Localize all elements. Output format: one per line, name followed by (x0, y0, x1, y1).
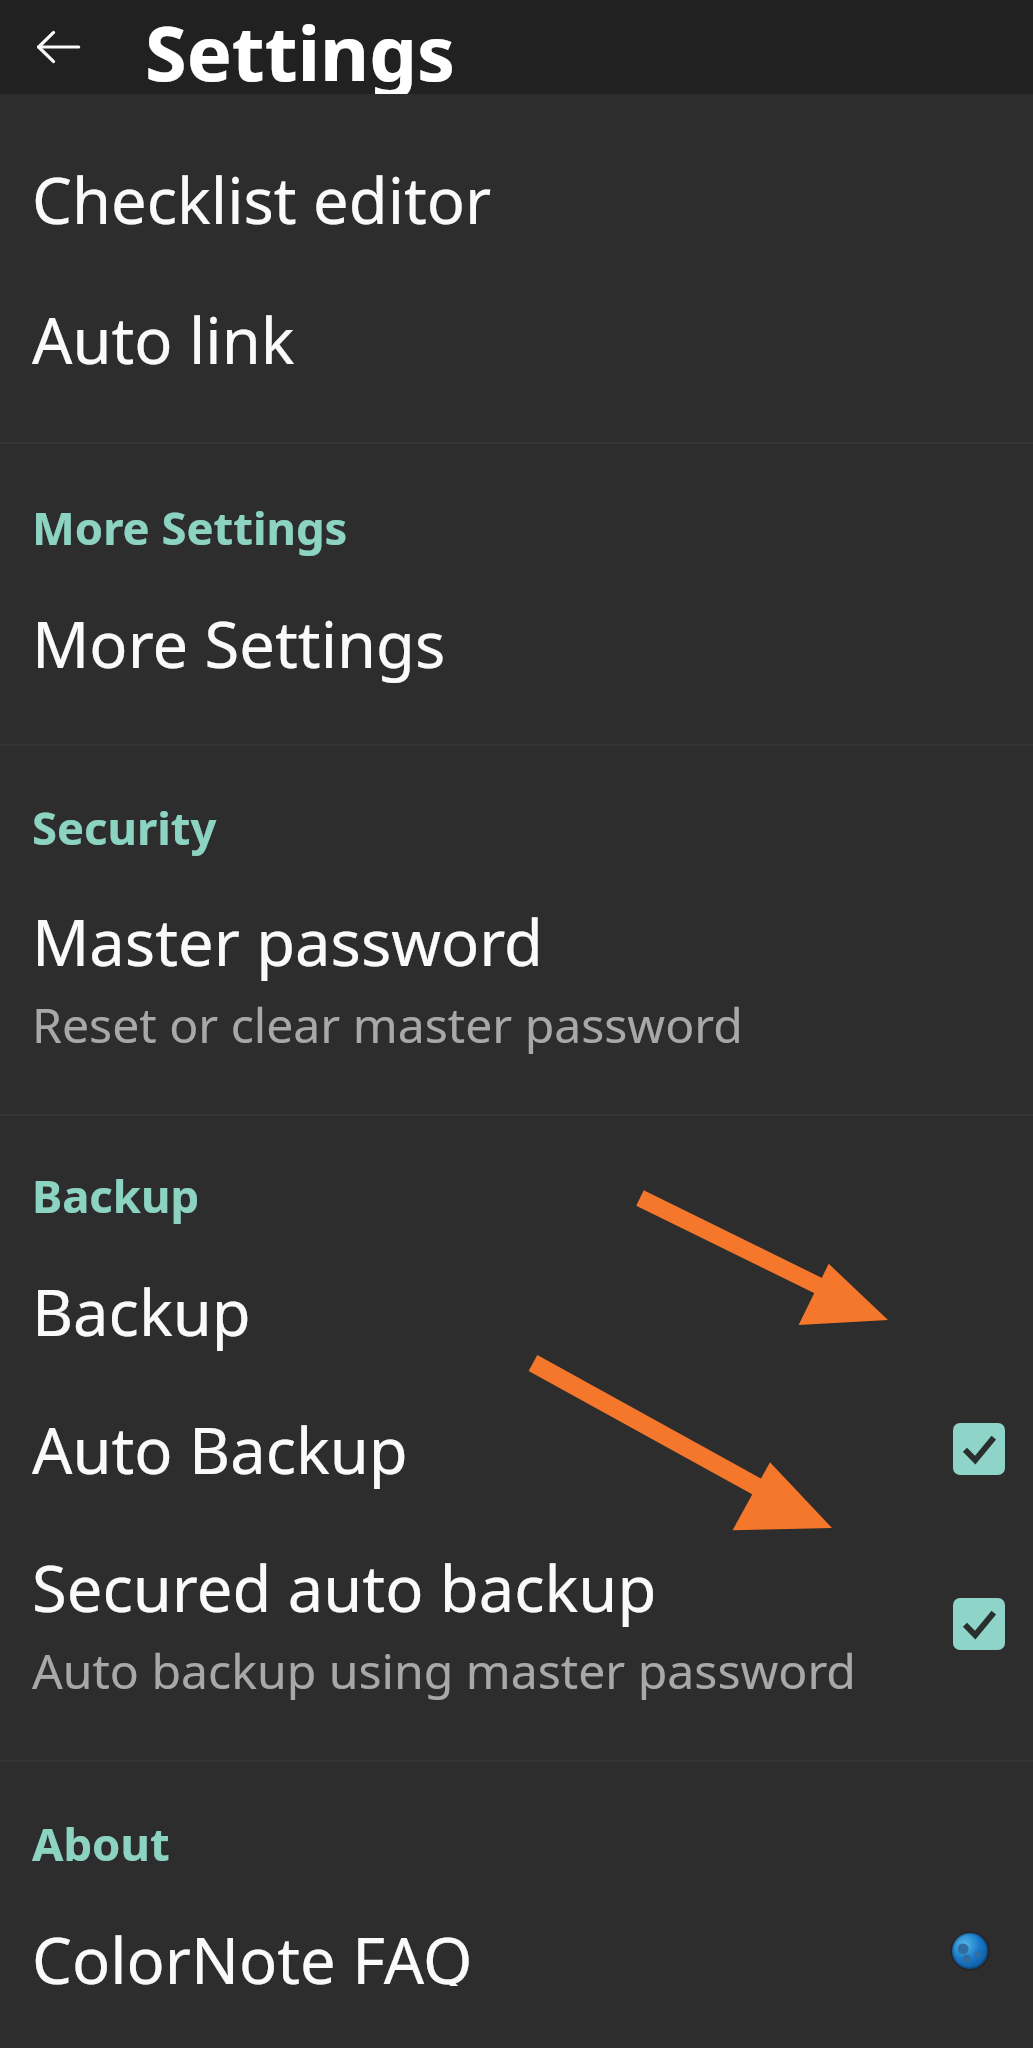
button[interactable]: Auto link (0, 296, 1033, 442)
button[interactable]: Backup (0, 1268, 1033, 1406)
staticText: Secured auto backup (32, 1544, 657, 1630)
staticText: Auto backup using master password (32, 1638, 856, 1704)
button[interactable]: ColorNote FAQ (0, 1916, 1033, 2048)
button[interactable]: Enabled (953, 1423, 1005, 1475)
staticText: Reset or clear master password (32, 992, 743, 1058)
button[interactable]: Master password (0, 898, 1033, 1114)
button[interactable]: Auto Backup (0, 1406, 1033, 1544)
staticText: More Settings (32, 496, 348, 558)
button[interactable]: Secured auto backup (0, 1544, 1033, 1760)
staticText: Auto link (32, 296, 295, 382)
staticText: ColorNote FAQ (32, 1916, 473, 1986)
staticText: Backup (32, 1164, 200, 1226)
staticText: Auto Backup (32, 1406, 408, 1492)
staticText: Security (32, 796, 217, 858)
staticText: Backup (32, 1268, 251, 1354)
button[interactable]: Open web FAQ (947, 1928, 993, 1974)
button[interactable]: Enabled (953, 1598, 1005, 1650)
staticText: About (32, 1812, 170, 1874)
button[interactable]: Back (18, 7, 98, 87)
staticText: Settings (145, 0, 455, 94)
staticText: Checklist editor (32, 156, 492, 242)
button[interactable]: Checklist editor (0, 94, 1033, 296)
staticText: Master password (32, 898, 543, 984)
staticText: More Settings (32, 600, 446, 686)
button[interactable]: More Settings (0, 600, 1033, 744)
